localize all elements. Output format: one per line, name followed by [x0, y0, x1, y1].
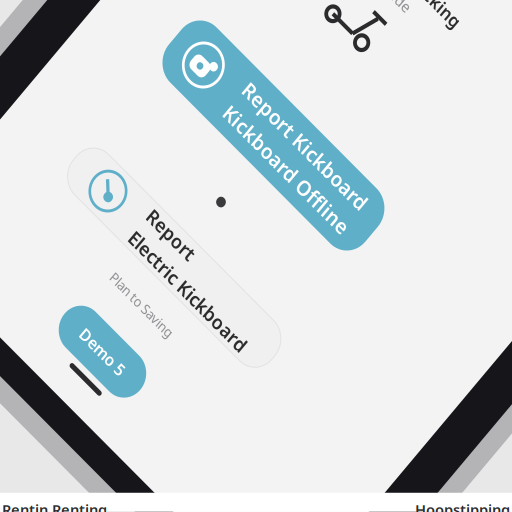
staticText: Plan to Saving	[117, 449, 202, 466]
button[interactable]: Report	[13, 376, 296, 428]
staticText: Your Ride	[109, 54, 175, 73]
staticText: Report	[106, 376, 169, 400]
staticText: Hoopstipping	[415, 500, 510, 512]
staticText: Kickboard Offline	[98, 248, 270, 275]
staticText: Report Kickboard	[98, 219, 269, 245]
staticText: Kickboard Tracking	[61, 28, 223, 51]
staticText: Rentin Renting	[2, 500, 107, 512]
button[interactable]: Report Kickboard	[12, 211, 292, 282]
staticText: Demo 5	[130, 507, 189, 512]
button[interactable]: Demo 5	[106, 495, 214, 512]
